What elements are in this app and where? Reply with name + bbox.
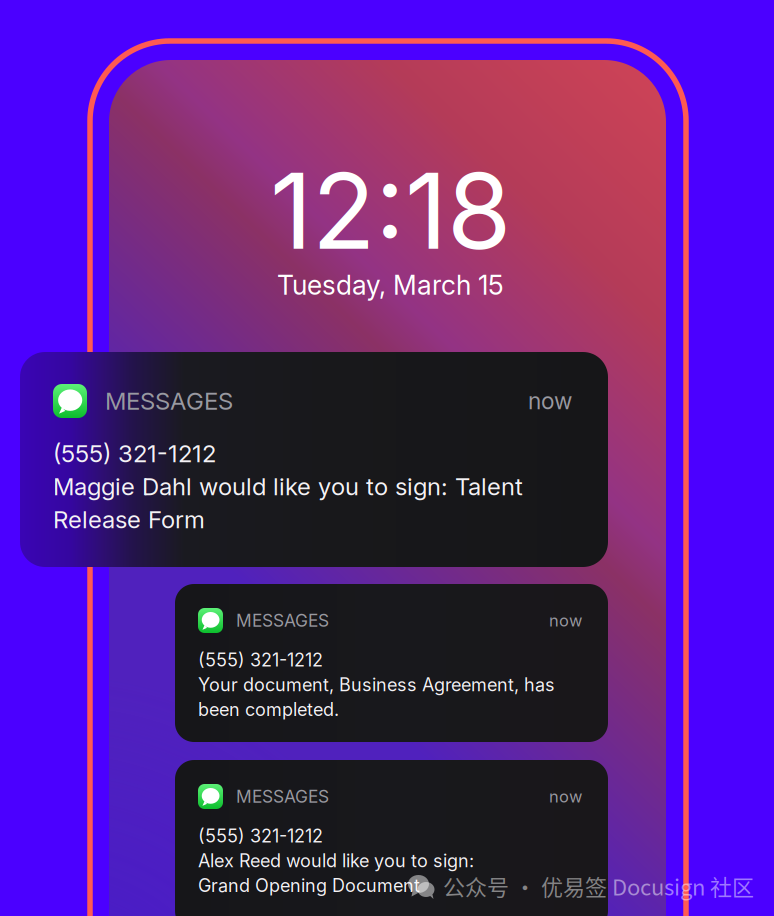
staticText: MESSAGES: [236, 610, 329, 631]
staticText: MESSAGES: [236, 786, 329, 807]
staticText: Tuesday, March 15: [277, 269, 504, 301]
staticText: now: [549, 786, 582, 806]
staticText: (555) 321-1212: [198, 825, 323, 847]
staticText: Grand Opening Document: [198, 875, 420, 896]
staticText: now: [528, 387, 572, 415]
staticText: Maggie Dahl would like you to sign: Tale…: [53, 472, 523, 501]
button[interactable]: MESSAGES: [175, 584, 608, 742]
staticText: now: [549, 610, 582, 630]
staticText: Your document, Business Agreement, has: [198, 674, 555, 696]
button[interactable]: MESSAGES: [20, 352, 608, 567]
staticText: (555) 321-1212: [53, 439, 216, 468]
staticText: Alex Reed would like you to sign:: [198, 850, 474, 872]
staticText: 公众号 · 优易签 Docusign 社区: [443, 870, 754, 902]
staticText: been completed.: [198, 699, 339, 720]
staticText: Release Form: [53, 505, 205, 534]
button[interactable]: MESSAGES: [175, 760, 608, 916]
staticText: 12:18: [270, 148, 511, 274]
staticText: (555) 321-1212: [198, 649, 323, 671]
staticText: MESSAGES: [105, 386, 233, 415]
